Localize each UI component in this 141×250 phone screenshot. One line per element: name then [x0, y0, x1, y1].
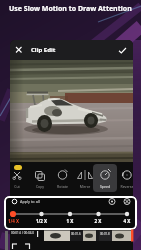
button[interactable] — [4, 210, 137, 218]
staticText: 1/4 X — [4, 218, 23, 224]
button[interactable] — [111, 40, 133, 60]
staticText: 4 X — [120, 218, 134, 224]
staticText: Apply to all — [20, 199, 40, 204]
staticText: Mirror — [77, 184, 93, 190]
staticText: Speed — [97, 184, 113, 190]
staticText: Reverse — [117, 184, 133, 190]
staticText: Use Slow Motion to Draw Attention — [9, 4, 132, 14]
staticText: 00:01.6 / 00:04.0 — [11, 231, 35, 235]
staticText: Copy — [33, 184, 47, 190]
button[interactable] — [93, 164, 117, 192]
staticText: Clip Edit — [31, 46, 56, 54]
staticText: Rotate — [54, 184, 71, 190]
staticText: 1/2 X — [32, 218, 51, 224]
staticText: 2 X — [91, 218, 105, 224]
button[interactable]: Apply to all — [12, 197, 40, 206]
button[interactable] — [10, 40, 28, 60]
staticText: 00:01.6 — [71, 232, 81, 236]
staticText: 1 X — [63, 218, 77, 224]
staticText: Cut — [11, 184, 23, 190]
staticText: 00:01.8 — [100, 232, 110, 236]
